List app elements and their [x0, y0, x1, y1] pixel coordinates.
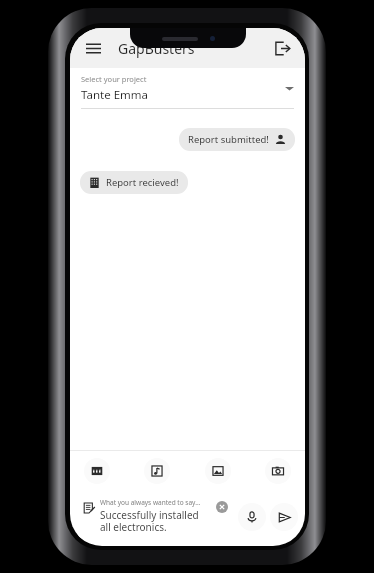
- staticText: Tante Emma: [81, 87, 149, 103]
- button[interactable]: Report recieved!: [80, 171, 188, 194]
- button[interactable]: Take photo: [265, 458, 291, 484]
- button[interactable]: Attach image: [205, 458, 231, 484]
- button[interactable]: Send message: [270, 503, 298, 531]
- button[interactable]: Select your project: [70, 68, 305, 114]
- staticText: Report submitted!: [188, 133, 269, 146]
- button[interactable]: Menu: [80, 35, 106, 61]
- button[interactable]: Report submitted!: [179, 128, 295, 151]
- button[interactable]: Voice input: [238, 503, 266, 531]
- button[interactable]: Log out: [269, 35, 295, 61]
- button[interactable]: What you always wanted to say...: [77, 493, 233, 540]
- staticText: Select your project: [81, 74, 147, 84]
- staticText: Successfully installed all electronics.: [100, 508, 212, 534]
- button[interactable]: Attach audio: [144, 458, 170, 484]
- staticText: Report recieved!: [106, 176, 179, 189]
- button[interactable]: Clear text: [215, 500, 229, 514]
- staticText: What you always wanted to say...: [100, 498, 201, 507]
- button[interactable]: Attach PDF: [84, 458, 110, 484]
- staticText: GapBusters: [118, 39, 195, 58]
